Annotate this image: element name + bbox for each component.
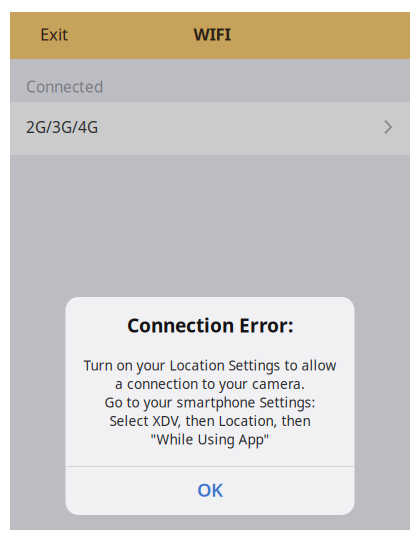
staticText: "While Using App" (150, 430, 269, 449)
staticText: OK (197, 477, 223, 502)
staticText: Turn on your Location Settings to allow (83, 356, 336, 374)
staticText: Select XDV, then Location, then (109, 411, 310, 430)
staticText: Exit (40, 23, 68, 45)
staticText: Connection Error: (127, 312, 293, 338)
staticText: a connection to your camera. (115, 374, 305, 393)
staticText: 2G/3G/4G (26, 117, 98, 137)
staticText: Go to your smartphone Settings: (104, 393, 315, 411)
button[interactable]: Exit (28, 16, 80, 55)
staticText: Connected (26, 76, 103, 97)
button[interactable]: OK (65, 467, 354, 515)
button[interactable]: 2G/3G/4G (10, 102, 410, 155)
staticText: WIFI (193, 23, 230, 45)
